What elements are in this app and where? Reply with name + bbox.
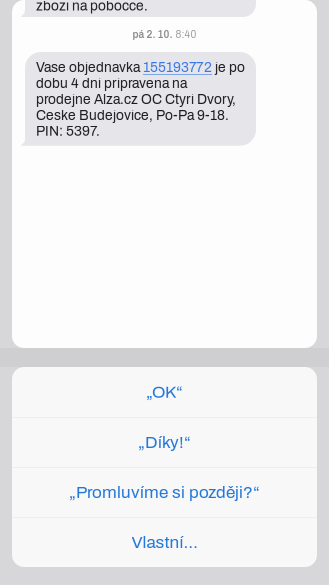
staticText: „Promluvíme si později?“ [69,483,260,502]
staticText: dobu 4 dni pripravena na [36,76,187,91]
staticText: Ceske Budejovice, Po-Pa 9-18. [36,108,229,123]
staticText: zbozi na pobocce. [36,0,148,13]
button[interactable]: „Díky!“ [12,417,317,467]
button[interactable]: Vlastní… [12,517,317,567]
staticText: Vase objednavka [36,60,143,75]
button[interactable]: „OK“ [12,367,317,417]
staticText: prodejne Alza.cz OC Ctyri Dvory, [36,92,236,107]
staticText: je po [212,60,245,75]
staticText: 155193772 [143,60,212,75]
staticText: PIN: 5397. [36,124,100,139]
staticText: „OK“ [146,383,183,401]
staticText: „Díky!“ [138,433,191,452]
staticText: pá 2. 10. [132,29,172,40]
staticText: 8:40 [175,29,196,40]
staticText: Vlastní… [131,533,197,552]
button[interactable]: „Promluvíme si později?“ [12,467,317,517]
